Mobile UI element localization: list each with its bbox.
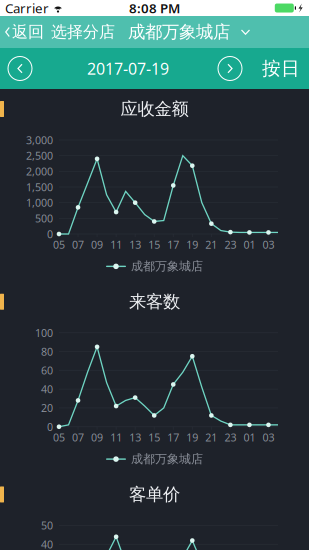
staticText: 11 [110,237,122,252]
button[interactable]: Previous day [8,56,32,80]
staticText: 19 [186,237,198,252]
staticText: 19 [186,430,198,444]
staticText: 成都万象城店 [131,259,203,274]
staticText: 13 [129,430,141,444]
staticText: 0 [47,227,53,241]
staticText: 07 [72,237,84,252]
staticText: 05 [53,430,65,444]
staticText: 15 [148,430,160,444]
staticText: 15 [148,237,160,252]
staticText: 03 [262,430,274,444]
staticText: 17 [167,430,179,444]
staticText: 09 [91,237,103,252]
staticText: 100 [35,326,53,340]
staticText: 13 [129,237,141,252]
staticText: 21 [205,237,217,252]
button[interactable]: 按日 [242,51,303,86]
staticText: 50 [41,518,53,533]
staticText: 40 [41,382,53,396]
staticText: 07 [72,430,84,444]
staticText: 来客数 [129,291,180,312]
staticText: 17 [167,237,179,252]
staticText: 23 [224,237,236,252]
staticText: 60 [41,363,53,377]
button[interactable]: 返回 [0,16,46,48]
staticText: 0 [47,420,53,434]
staticText: 09 [91,430,103,444]
button[interactable]: Next day [218,56,242,80]
staticText: 按日 [262,57,300,80]
staticText: 成都万象城店 [131,452,203,466]
staticText: 03 [262,237,274,252]
staticText: 8:08 PM [129,0,180,17]
staticText: 11 [110,430,122,444]
staticText: 01 [243,237,255,252]
staticText: 2,500 [26,149,53,163]
staticText: 500 [35,211,53,225]
staticText: 成都万象城店 [128,21,230,43]
staticText: 客单价 [129,484,180,505]
staticText: 1,000 [26,196,53,210]
button[interactable]: 成都万象城店 [120,15,257,49]
staticText: 3,000 [26,133,53,147]
staticText: 2017-07-19 [87,58,169,79]
staticText: 23 [224,430,236,444]
staticText: 80 [41,344,53,359]
staticText: 01 [243,430,255,444]
staticText: 1,500 [26,180,53,194]
staticText: 40 [41,537,53,550]
staticText: Carrier [5,0,49,17]
staticText: 20 [41,401,53,415]
staticText: 05 [53,237,65,252]
staticText: 21 [205,430,217,444]
staticText: 返回 [12,22,44,42]
button[interactable]: 选择分店 [46,16,120,48]
staticText: 选择分店 [51,22,115,42]
staticText: 2,000 [26,164,53,178]
staticText: 应收金额 [120,98,188,120]
